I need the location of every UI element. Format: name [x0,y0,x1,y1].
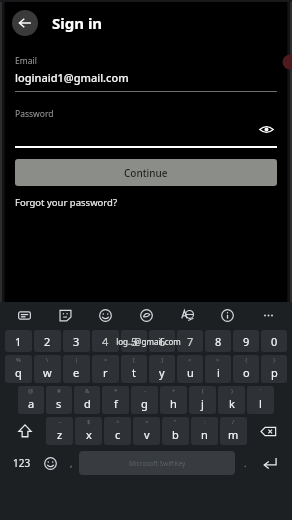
button[interactable]: + [160,386,187,414]
button[interactable]: Backspace [249,417,287,445]
staticText: < [188,356,192,364]
staticText: & [85,387,90,395]
button[interactable]: = [92,355,119,383]
button[interactable]: 3 [63,330,90,352]
staticText: ) [231,387,233,395]
button[interactable]: # [46,386,72,414]
staticText: + [172,387,176,395]
button[interactable]: 123 [7,449,37,477]
staticText: 9 [243,334,250,349]
staticText: log…@gmail.com [101,336,196,347]
button[interactable]: 7 [177,330,203,352]
button[interactable]: / [220,417,247,445]
button[interactable]: 6 [149,330,175,352]
button[interactable]: Emoji [37,449,63,477]
button[interactable]: Stickers [55,305,75,325]
staticText: , [70,457,73,469]
button[interactable]: Translate [177,305,197,325]
staticText: o [243,365,250,380]
button[interactable]: Emoji [95,305,115,325]
button[interactable]: { [233,355,259,383]
button[interactable]: : [191,417,218,445]
button[interactable]: Show password [255,118,277,140]
button[interactable]: = [133,417,160,445]
staticText: # [57,387,61,395]
button[interactable]: } [261,355,287,383]
button[interactable]: 5 [121,330,147,352]
staticText: e [73,365,80,380]
staticText: 0 [271,334,278,349]
button[interactable]: 1 [5,330,32,352]
staticText: p [271,365,278,380]
button[interactable]: ' [247,386,274,414]
staticText: Continue [124,166,168,180]
button[interactable]: Back [12,10,38,36]
staticText: b [172,427,179,442]
button[interactable]: % [5,355,32,383]
staticText: Sign in [52,13,103,33]
button[interactable]: $ [75,417,102,445]
button[interactable]: & [74,386,100,414]
staticText: h [170,396,177,411]
staticText: 3 [73,334,80,349]
button[interactable]: GIF search [136,305,156,325]
button[interactable]: Space [79,451,235,475]
button[interactable]: | [63,355,90,383]
button[interactable]: 0 [261,330,287,352]
button[interactable]: Continue [15,159,277,186]
button[interactable]: ^ [104,417,131,445]
button[interactable]: ] [149,355,175,383]
button[interactable]: Forgot your password? [15,196,118,209]
staticText: k [229,396,235,411]
staticText: l [259,396,262,411]
button[interactable]: 4 [92,330,119,352]
button[interactable]: < [177,355,203,383]
staticText: ~ [58,418,62,426]
button[interactable]: Info [217,305,237,325]
button[interactable]: log…@gmail.com [101,333,196,349]
staticText: x [86,427,92,442]
button[interactable]: More options [258,305,278,325]
staticText: . [244,457,247,469]
staticText: u [187,365,194,380]
staticText: Email [15,55,37,67]
button[interactable]: > [205,355,231,383]
button[interactable]: ) [218,386,245,414]
button[interactable]: 9 [233,330,259,352]
button[interactable]: 2 [34,330,61,352]
staticText: 7 [187,334,194,349]
button[interactable]: [ [121,355,147,383]
button[interactable]: ~ [46,417,73,445]
staticText: d [84,396,91,411]
button[interactable]: @ [18,386,44,414]
button[interactable]: \ [34,355,61,383]
staticText: r [103,365,108,380]
staticText: f [114,396,118,411]
staticText: > [216,356,220,364]
staticText: s [56,396,62,411]
button[interactable]: . [235,449,255,477]
button[interactable]: Clipboard [14,305,34,325]
staticText: = [104,356,108,364]
button[interactable]: Enter [255,449,285,477]
staticText: 5 [131,334,138,349]
staticText: @ [28,387,34,395]
staticText: % [16,356,21,364]
staticText: | [75,356,79,364]
button[interactable]: 8 [205,330,231,352]
button[interactable]: Shift [5,417,44,445]
staticText: 2 [44,334,51,349]
button[interactable]: " [162,417,189,445]
staticText: [ [133,356,135,364]
button[interactable]: - [131,386,158,414]
staticText: j [201,396,204,411]
button[interactable]: * [102,386,129,414]
staticText: ^ [116,418,120,426]
staticText: ' [260,387,262,395]
staticText: } [273,356,276,364]
button[interactable]: , [63,449,79,477]
staticText: z [57,427,63,442]
staticText: Forgot your password? [15,196,118,209]
staticText: g [141,396,148,411]
button[interactable]: ( [189,386,216,414]
